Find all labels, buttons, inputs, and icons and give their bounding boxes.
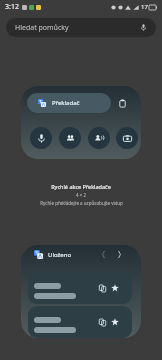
button[interactable]: Kopírovat [28, 306, 132, 338]
button[interactable]: Další [112, 247, 126, 261]
staticText: Překladač [52, 99, 80, 107]
staticText: 4 × 2 [76, 192, 87, 198]
staticText: Uloženo [48, 251, 72, 259]
button[interactable]: Schránka [111, 92, 133, 114]
button[interactable]: Kopírovat [28, 272, 132, 304]
button[interactable]: Hvězdička [108, 315, 122, 329]
staticText: Hledat pomůcky [15, 23, 69, 33]
button[interactable]: Hledat pomůcky [6, 18, 156, 37]
staticText: 3:12 [5, 2, 19, 12]
button[interactable]: Předchozí [96, 247, 110, 261]
staticText: 17 [141, 3, 148, 11]
button[interactable]: Překladač [27, 93, 111, 113]
staticText: Rychle překládejte a uzpůsobujte vstup [40, 200, 123, 206]
button[interactable]: Mluvit [30, 127, 52, 149]
button[interactable]: Hvězdička [108, 281, 122, 295]
button[interactable]: Přepis [88, 127, 110, 149]
button[interactable]: Fotoaparát [116, 127, 138, 149]
button[interactable]: Kopírovat [95, 281, 109, 295]
staticText: Rychlé akce Překladače [51, 183, 111, 190]
button[interactable]: Kopírovat [95, 315, 109, 329]
button[interactable]: Konverzace [59, 127, 81, 149]
